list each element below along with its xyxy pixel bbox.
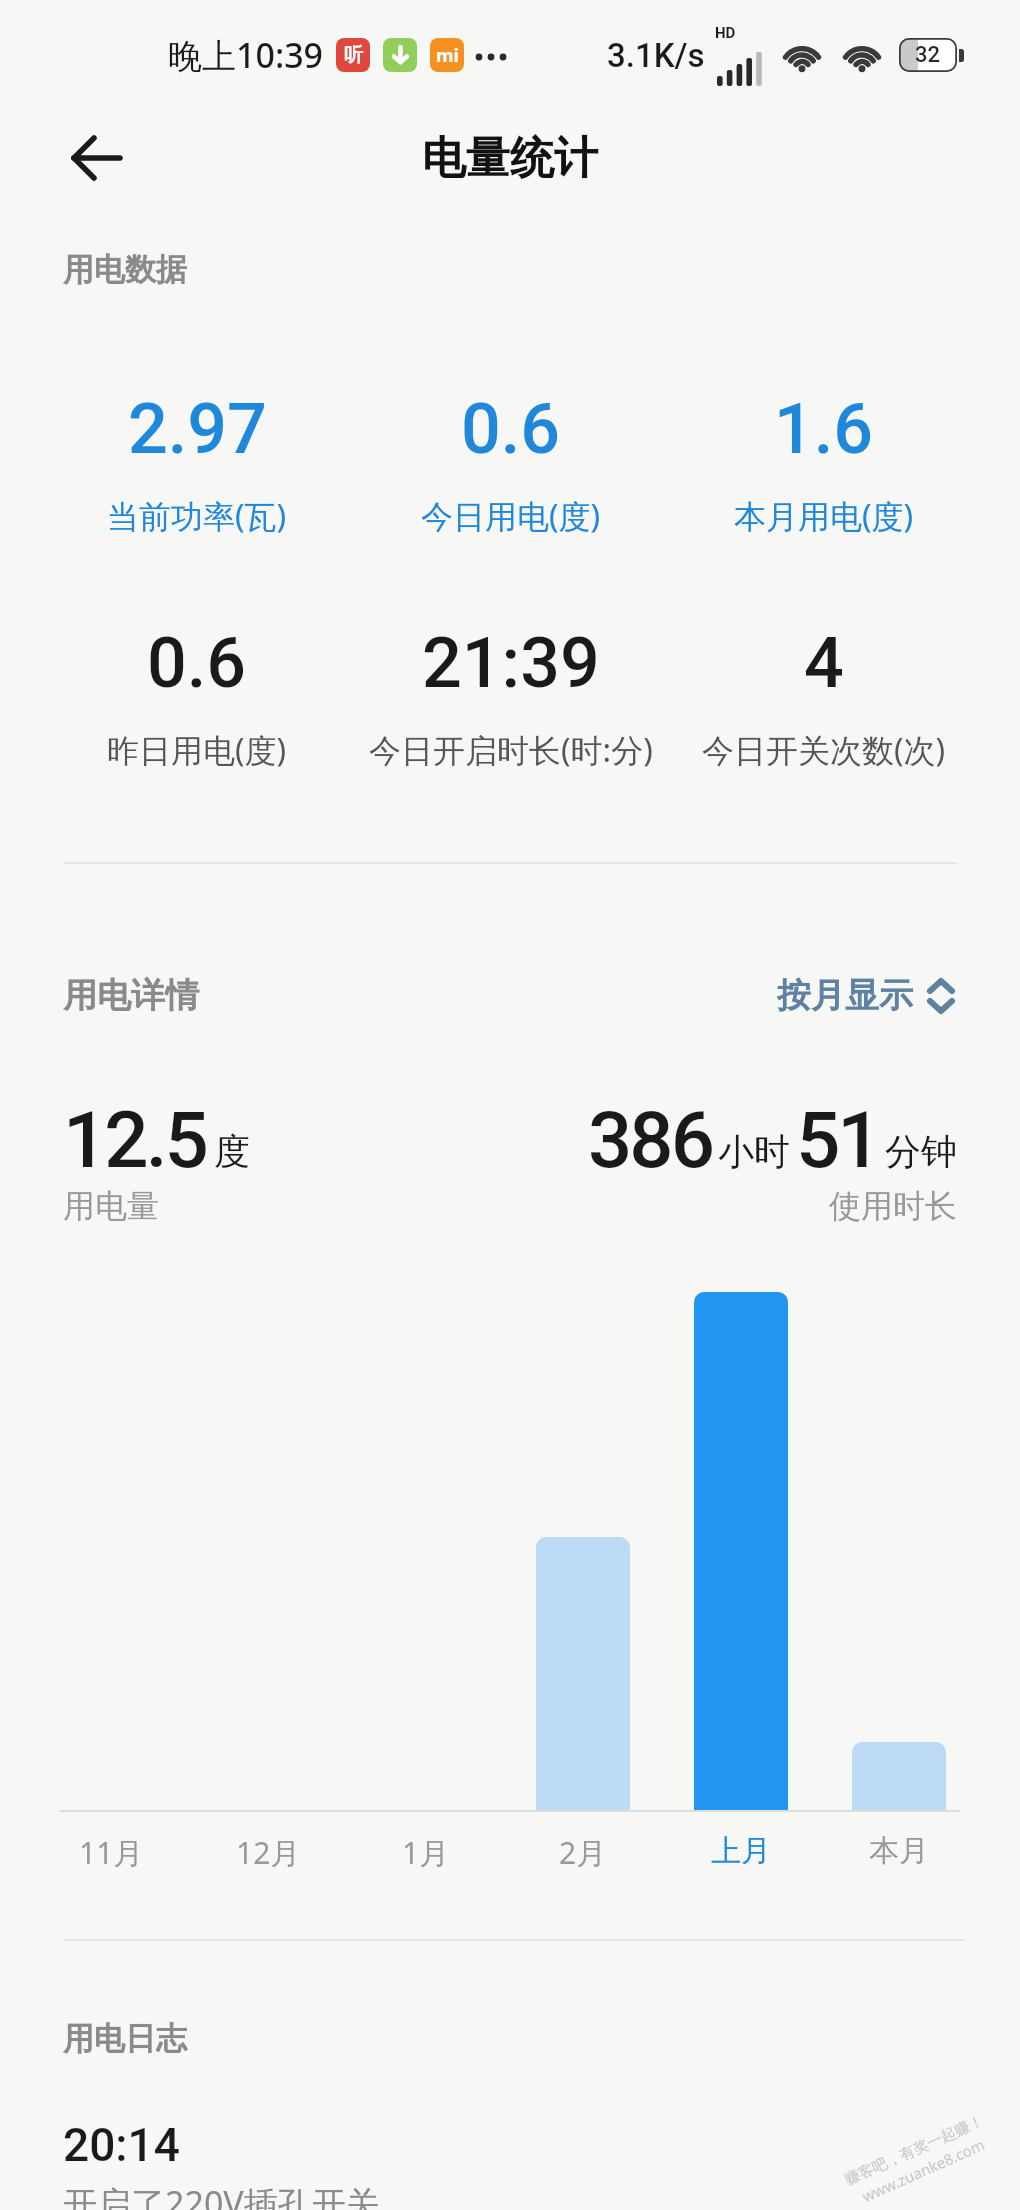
staticText: 本月用电(度) xyxy=(734,494,914,538)
staticText: 0.6 xyxy=(147,622,247,704)
staticText: 晚上10:39 xyxy=(168,32,324,78)
staticText: 用电详情 xyxy=(63,974,199,1017)
staticText: 今日开启时长(时:分) xyxy=(369,728,653,772)
staticText: 386 xyxy=(588,1095,712,1186)
button[interactable]: 上月 xyxy=(711,1832,771,1870)
staticText: 听 xyxy=(344,43,363,67)
staticText: 用电量 xyxy=(63,1186,159,1226)
staticText: 昨日用电(度) xyxy=(107,728,287,772)
staticText: 12.5 xyxy=(63,1095,206,1186)
staticText: 按月显示 xyxy=(777,974,913,1017)
staticText: 分钟 xyxy=(885,1129,957,1174)
staticText: 使用时长 xyxy=(829,1186,957,1226)
staticText: 当前功率(瓦) xyxy=(107,494,287,538)
button[interactable] xyxy=(72,136,124,180)
button[interactable]: 11月 xyxy=(79,1832,144,1873)
staticText: 0.6 xyxy=(461,388,561,470)
staticText: 用电日志 xyxy=(63,2019,187,2058)
button[interactable]: 2月 xyxy=(559,1832,607,1873)
staticText: 开启了220V插孔开关 xyxy=(63,2180,380,2210)
staticText: 3.1K/s xyxy=(607,36,705,75)
staticText: 51 xyxy=(796,1095,879,1186)
staticText: 32 xyxy=(915,42,941,68)
button[interactable]: 1月 xyxy=(402,1832,450,1873)
staticText: 赚客吧，有奖一起赚！ www.zuanke8.com xyxy=(842,2111,996,2210)
button[interactable]: 本月 xyxy=(869,1832,929,1870)
button[interactable]: 12月 xyxy=(236,1832,301,1873)
staticText: 1.6 xyxy=(774,388,874,470)
staticText: 今日开关次数(次) xyxy=(702,728,946,772)
staticText: 2.97 xyxy=(128,388,267,470)
staticText: 度 xyxy=(214,1129,250,1174)
staticText: 4 xyxy=(804,622,844,704)
staticText: 小时 xyxy=(718,1129,790,1174)
staticText: 用电数据 xyxy=(63,250,187,289)
staticText: 电量统计 xyxy=(422,131,598,186)
staticText: mi xyxy=(436,43,459,68)
staticText: 今日用电(度) xyxy=(421,494,601,538)
staticText: HD xyxy=(715,24,736,42)
staticText: 21:39 xyxy=(422,622,600,704)
button[interactable]: 按月显示 xyxy=(777,974,957,1017)
staticText: 20:14 xyxy=(63,2118,180,2172)
